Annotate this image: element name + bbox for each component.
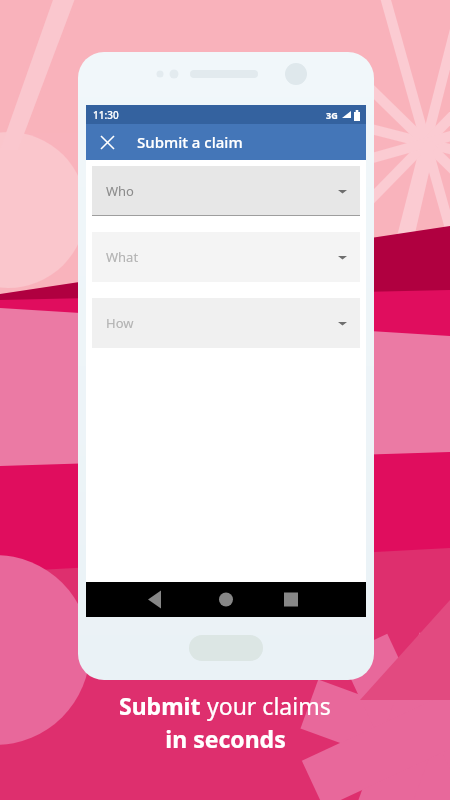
button[interactable]: What [92,232,360,282]
staticText: in seconds [165,723,286,754]
staticText: 11:30 [93,108,119,122]
button[interactable]: How [92,298,360,348]
staticText: your claims [207,690,331,721]
staticText: Submit [119,690,207,721]
button[interactable]: Who [92,166,360,216]
staticText: Who [106,182,134,200]
staticText: What [106,248,139,266]
button[interactable]: Close [92,127,122,157]
button[interactable]: Home [189,635,263,661]
staticText: How [106,314,134,332]
button[interactable]: SUBMIT [86,595,366,617]
staticText: 3G [326,109,338,121]
staticText: SUBMIT [205,599,247,614]
staticText: Submit a claim [137,132,243,152]
